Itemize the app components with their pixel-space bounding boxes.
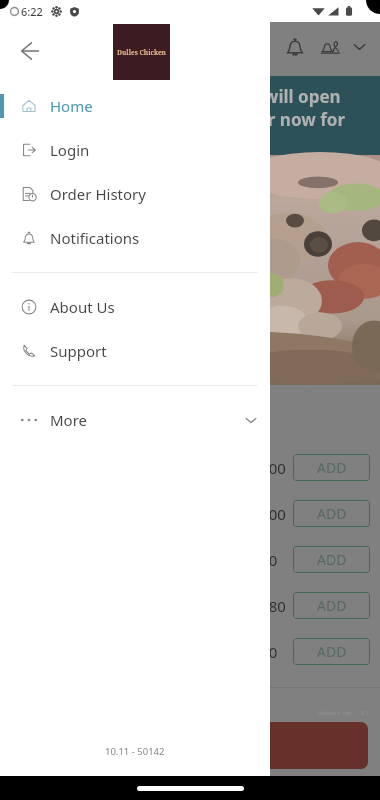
staticText: $9.70 [239,550,278,570]
staticText: soon. You can place your order now for [16,108,345,131]
staticText: ADD [317,458,347,477]
button[interactable]: ADD [293,454,370,481]
button[interactable]: Expand [347,34,371,58]
button[interactable]: More [0,398,270,442]
staticText: The restaurant is closed, and will open [16,85,341,108]
staticText: More [50,410,88,430]
staticText: $12.00 [239,504,286,524]
button[interactable]: Notifications [0,216,270,260]
button[interactable]: About Us [0,285,270,329]
staticText: ADD [317,504,347,523]
staticText: ADD [317,550,347,569]
button[interactable]: Order History [0,172,270,216]
staticText: ADD [317,642,347,661]
staticText: Support [50,341,107,361]
button[interactable]: Login [0,128,270,172]
staticText: $10.00 [239,458,286,478]
button[interactable]: ADD [293,500,370,527]
staticText: ADD [317,596,347,615]
staticText: Home [50,96,93,116]
staticText: $0 [361,709,368,717]
button[interactable]: Offers [315,32,346,63]
button[interactable]: ADD [293,546,370,573]
staticText: $11.80 [239,596,286,616]
button[interactable]: Notifications [278,30,311,63]
staticText: Delivery fee [318,709,352,717]
staticText: Order History [50,184,146,204]
staticText: Login [50,140,90,160]
staticText: 6:22 [21,4,43,19]
button[interactable]: Home [0,84,270,128]
staticText: About Us [50,297,115,317]
staticText: $8.70 [239,642,278,662]
staticText: Dulles Chicken [117,48,166,57]
staticText: Notifications [50,228,140,248]
button[interactable]: ADD [293,592,370,619]
button[interactable]: Back [11,32,48,69]
button[interactable]: ADD [293,638,370,665]
button[interactable] [12,722,368,769]
button[interactable]: Support [0,329,270,373]
staticText: 10.11 - 50142 [105,745,165,758]
